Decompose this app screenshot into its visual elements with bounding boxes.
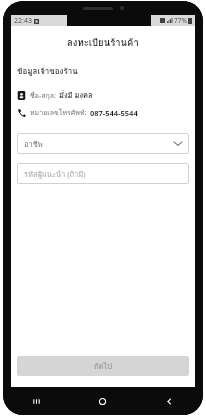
- staticText: 087-544-5544: [90, 108, 138, 118]
- button[interactable]: Back: [136, 387, 203, 415]
- button[interactable]: Home: [69, 387, 136, 415]
- staticText: ลงทะเบียนร้านค้า: [67, 35, 139, 50]
- button[interactable]: รหัสผู้แนะนำ (ถ้ามี): [17, 163, 189, 184]
- staticText: มั่งมี มงคล: [59, 89, 93, 101]
- button[interactable]: Recent apps: [3, 387, 69, 415]
- staticText: ถัดไป: [94, 360, 112, 372]
- button[interactable]: อาชีพ: [17, 133, 189, 154]
- staticText: ข้อมูลเจ้าของร้าน: [17, 65, 78, 78]
- staticText: รหัสผู้แนะนำ (ถ้ามี): [24, 168, 86, 180]
- button[interactable]: ถัดไป: [17, 356, 189, 376]
- staticText: หมายเลขโทรศัพท์:: [30, 107, 87, 118]
- staticText: 77%: [174, 16, 187, 25]
- staticText: 22:43: [14, 16, 32, 26]
- staticText: ชื่อ-สกุล:: [30, 90, 56, 101]
- staticText: อาชีพ: [24, 138, 43, 150]
